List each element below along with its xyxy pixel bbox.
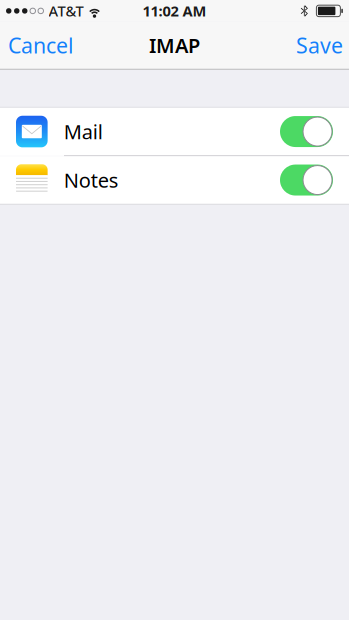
staticText: IMAP xyxy=(149,32,200,59)
button[interactable]: Cancel xyxy=(0,22,82,68)
staticText: Notes xyxy=(64,167,119,193)
button[interactable]: Save xyxy=(288,22,349,68)
staticText: Mail xyxy=(64,118,103,145)
button[interactable]: Mail xyxy=(0,108,349,155)
staticText: Cancel xyxy=(8,31,74,59)
button[interactable]: Notes xyxy=(0,156,349,204)
staticText: 11:02 AM xyxy=(142,1,206,21)
staticText: Save xyxy=(296,31,343,59)
staticText: AT&T xyxy=(48,1,83,21)
